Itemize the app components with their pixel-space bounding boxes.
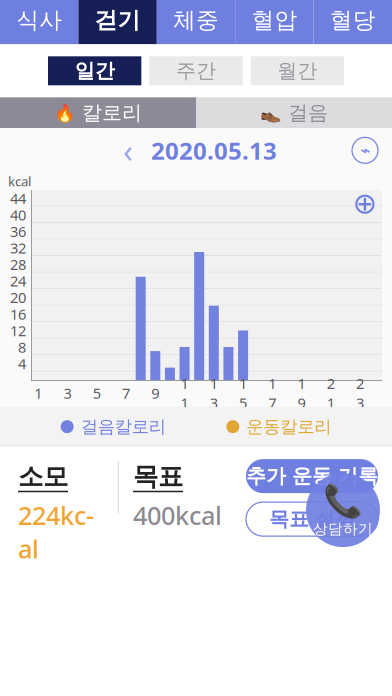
staticText: 혈압 (251, 6, 297, 34)
staticText: 12 (10, 321, 26, 340)
staticText: 32 (10, 238, 26, 258)
button[interactable]: 일간 (48, 56, 141, 85)
staticText: 상담하기 (313, 520, 373, 538)
staticText: ⊕ (352, 187, 377, 220)
staticText: 주간 (176, 58, 216, 83)
staticText: 1 (34, 383, 42, 403)
staticText: 걷기 (95, 6, 141, 34)
staticText: ⌁ (360, 140, 370, 160)
button[interactable]: 월간 (251, 56, 344, 85)
staticText: 일간 (75, 58, 115, 83)
staticText: 👞 (260, 103, 282, 123)
staticText: 17 (268, 374, 276, 413)
staticText: 8 (18, 337, 26, 357)
staticText: 걸음 (288, 100, 328, 125)
staticText: 19 (298, 374, 306, 413)
button[interactable]: 이전 날짜 (115, 135, 141, 165)
staticText: ‹ (123, 129, 133, 172)
staticText: 13 (210, 374, 218, 413)
staticText: 목표 설정 (269, 507, 355, 531)
staticText: 40 (10, 205, 26, 225)
button[interactable]: 🔥 (0, 97, 196, 128)
button[interactable]: 공유 (352, 137, 378, 163)
staticText: 운동칼로리 (246, 416, 331, 437)
staticText: 16 (10, 304, 26, 324)
staticText: 📞 (323, 482, 363, 519)
staticText: 400kcal (133, 498, 222, 532)
staticText: 월간 (277, 58, 317, 83)
staticText: 5 (93, 383, 101, 403)
staticText: 20 (10, 288, 26, 307)
staticText: 44 (10, 189, 26, 208)
button[interactable]: 체중 (157, 0, 235, 44)
button[interactable]: 주간 (149, 56, 243, 85)
staticText: 식사 (16, 6, 62, 34)
staticText: kcal (8, 172, 31, 190)
button[interactable]: 👞 (196, 97, 392, 128)
button[interactable]: 혈압 (235, 0, 314, 44)
staticText: 3 (64, 383, 72, 403)
staticText: 224kcal (18, 498, 94, 565)
staticText: 21 (327, 374, 335, 413)
staticText: 9 (151, 383, 159, 403)
button[interactable]: 혈당 (314, 0, 392, 44)
staticText: 11 (181, 374, 189, 413)
button[interactable]: 확대 (350, 188, 380, 218)
button[interactable]: 추가 운동 기록 (246, 459, 378, 493)
staticText: 2020.05.13 (151, 134, 277, 166)
staticText: 걸음칼로리 (81, 416, 166, 437)
staticText: 24 (10, 271, 26, 291)
staticText: 혈당 (330, 6, 376, 34)
staticText: 칼로리 (82, 100, 142, 125)
staticText: 28 (10, 255, 26, 274)
staticText: 7 (122, 383, 130, 403)
staticText: 체중 (173, 6, 219, 34)
button[interactable]: 식사 (0, 0, 78, 44)
staticText: 4 (18, 354, 26, 373)
staticText: 목표 (133, 461, 183, 492)
staticText: 추가 운동 기록 (246, 464, 378, 488)
staticText: 🔥 (54, 103, 76, 123)
staticText: 15 (239, 374, 247, 413)
staticText: 23 (356, 374, 364, 413)
button[interactable]: 📞 (306, 473, 380, 547)
staticText: 36 (10, 222, 26, 241)
button[interactable]: 걷기 (78, 0, 157, 44)
button[interactable]: 목표 설정 (246, 502, 378, 536)
staticText: 소모 (18, 461, 68, 492)
